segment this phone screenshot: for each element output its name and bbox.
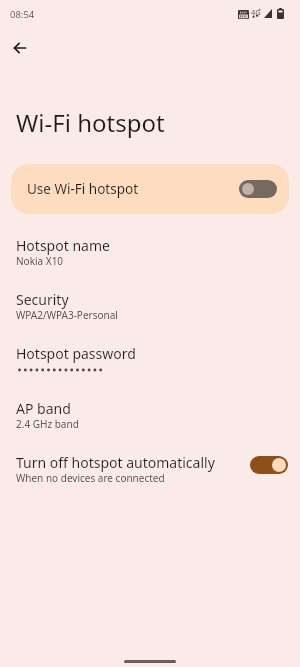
button[interactable]: Turn off hotspot automatically switch, o…: [250, 456, 288, 474]
staticText: +: [258, 6, 262, 14]
staticText: 2.4 GHz band: [16, 417, 79, 431]
staticText: 08:54: [10, 8, 35, 21]
staticText: AP band: [16, 399, 71, 418]
staticText: Hotspot name: [16, 236, 110, 255]
button[interactable]: Use Wi-Fi hotspot switch, off: [239, 180, 277, 198]
staticText: WPA2/WPA3-Personal: [16, 308, 118, 322]
staticText: Turn off hotspot automatically: [16, 453, 215, 472]
staticText: When no devices are connected: [16, 471, 165, 485]
button[interactable]: Back: [8, 36, 32, 60]
staticText: Hotspot password: [16, 344, 136, 363]
button[interactable]: Security: [0, 288, 300, 342]
staticText: Wi-Fi hotspot: [16, 106, 165, 139]
button[interactable]: Use Wi-Fi hotspot: [11, 164, 289, 214]
button[interactable]: Hotspot name: [0, 234, 300, 288]
staticText: Security: [16, 290, 69, 309]
staticText: 4G: [251, 7, 261, 17]
button[interactable]: Turn off hotspot automatically: [0, 451, 300, 505]
button[interactable]: AP band: [0, 397, 300, 451]
button[interactable]: Hotspot password: [0, 342, 300, 396]
staticText: Use Wi-Fi hotspot: [27, 180, 139, 198]
staticText: Nokia X10: [16, 254, 64, 268]
